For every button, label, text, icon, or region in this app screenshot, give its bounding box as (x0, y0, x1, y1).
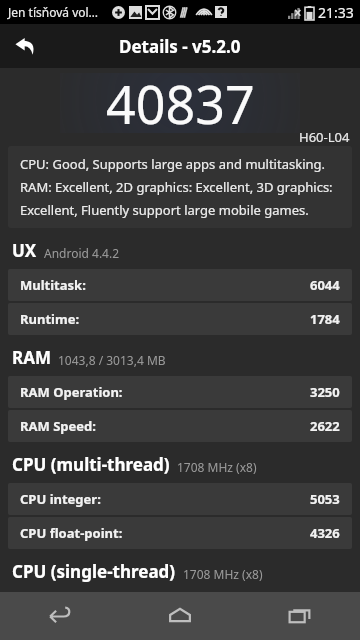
staticText: H60-L04 (299, 128, 350, 146)
staticText: UX (12, 239, 37, 262)
staticText: 5053 (310, 490, 340, 508)
staticText: 21:33 (318, 3, 354, 22)
button[interactable]: RAM Speed: (8, 410, 352, 442)
staticText: Android 4.4.2 (44, 245, 120, 261)
staticText: RAM Speed: (20, 417, 96, 435)
button[interactable]: Multitask: (8, 269, 352, 301)
button[interactable]: Home (120, 592, 240, 640)
staticText: Runtime: (20, 310, 80, 328)
staticText: 1708 MHz (x8) (177, 459, 257, 475)
button[interactable]: Runtime: (8, 303, 352, 335)
staticText: RAM Operation: (20, 383, 123, 401)
button[interactable]: CPU integer: (8, 483, 352, 515)
button[interactable]: Recent apps (240, 592, 360, 640)
staticText: 4326 (310, 524, 340, 542)
staticText: 1708 MHz (x8) (183, 566, 263, 582)
staticText: Multitask: (20, 276, 86, 294)
button[interactable]: Back (0, 592, 120, 640)
staticText: 6044 (310, 276, 340, 294)
staticText: 1043,8 / 3013,4 MB (58, 352, 166, 368)
staticText: RAM (12, 346, 51, 369)
button[interactable]: CPU float-point: (8, 517, 352, 549)
staticText: CPU float-point: (20, 524, 123, 542)
staticText: CPU (multi-thread) (12, 453, 170, 476)
staticText: CPU: Good, Supports large apps and multi… (20, 155, 340, 219)
staticText: 1784 (310, 310, 340, 328)
staticText: 2622 (310, 417, 340, 435)
staticText: 40837 (106, 68, 255, 139)
staticText: Details - v5.2.0 (119, 35, 241, 58)
button[interactable]: RAM Operation: (8, 376, 352, 408)
button[interactable]: Back (4, 24, 48, 68)
staticText: Jen tísňová vol… (8, 4, 99, 20)
staticText: CPU (single-thread) (12, 560, 176, 583)
staticText: 3250 (310, 383, 340, 401)
staticText: CPU integer: (20, 490, 101, 508)
